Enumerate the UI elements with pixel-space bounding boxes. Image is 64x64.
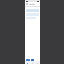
button[interactable]: Profile <box>36 62 39 64</box>
button[interactable]: Home <box>26 62 29 64</box>
button[interactable] <box>31 59 34 61</box>
button[interactable]: Search <box>31 62 34 64</box>
button[interactable]: Menu <box>25 2 40 6</box>
button[interactable]: Add <box>26 59 30 61</box>
